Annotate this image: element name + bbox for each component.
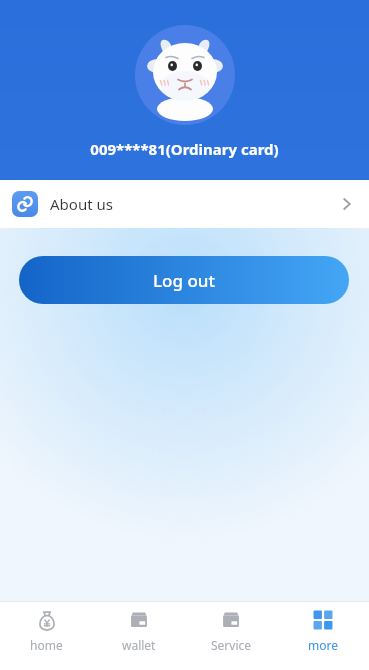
staticText: more [308,637,338,653]
staticText: About us [50,194,113,214]
button[interactable]: Service [185,601,277,670]
staticText: 009****81(Ordinary card) [90,139,279,159]
button[interactable]: Log out [19,256,349,304]
button[interactable]: About us [0,180,369,228]
staticText: Service [211,637,252,653]
staticText: wallet [122,637,156,653]
staticText: Log out [153,269,215,292]
button[interactable]: wallet [93,601,185,670]
staticText: home [30,637,63,653]
button[interactable]: more [277,601,369,670]
button[interactable]: home [0,601,93,670]
